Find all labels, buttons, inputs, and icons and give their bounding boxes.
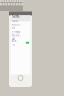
staticText: Alerts	[12, 39, 18, 46]
button[interactable]: Account	[10, 23, 30, 29]
staticText: General	[12, 34, 21, 41]
staticText: Settings	[12, 13, 20, 24]
button[interactable]: General	[10, 34, 30, 40]
button[interactable]: Alerts	[10, 40, 30, 45]
button[interactable]: Privacy	[10, 29, 30, 34]
staticText: Privacy	[12, 30, 20, 33]
staticText: Account	[12, 23, 21, 30]
